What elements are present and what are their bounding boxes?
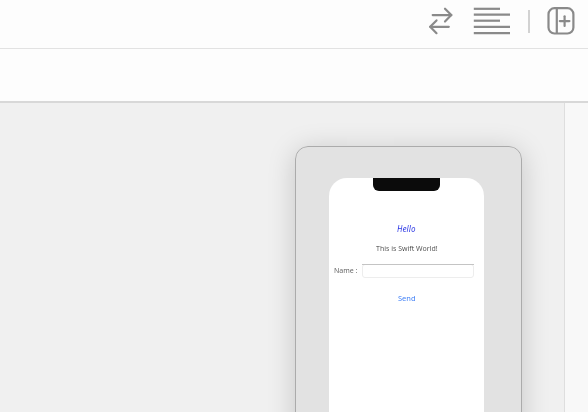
- button[interactable]: [427, 7, 457, 35]
- button[interactable]: [470, 6, 514, 38]
- staticText: Send: [398, 293, 416, 303]
- button[interactable]: [546, 6, 578, 38]
- staticText: Hello: [397, 223, 416, 234]
- staticText: Name :: [334, 266, 358, 276]
- button[interactable]: Send: [398, 293, 416, 303]
- staticText: This is Swift World!: [376, 244, 438, 254]
- button[interactable]: [362, 264, 474, 278]
